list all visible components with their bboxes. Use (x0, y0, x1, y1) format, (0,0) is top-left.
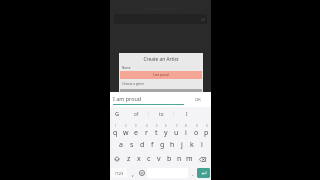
staticText: e (134, 128, 138, 138)
staticText: g (160, 140, 165, 150)
staticText: ?123 (115, 171, 124, 176)
button[interactable]: n (174, 152, 184, 166)
button[interactable]: Shift (110, 152, 124, 166)
button[interactable]: Backspace (194, 152, 211, 166)
staticText: I am proud (153, 73, 169, 77)
button[interactable]: f (147, 138, 157, 152)
button[interactable]: b (164, 152, 174, 166)
staticText: 6 (165, 124, 167, 128)
button[interactable]: I (174, 107, 199, 120)
staticText: 9 (196, 124, 198, 128)
staticText: z (127, 154, 131, 164)
button[interactable]: d (137, 138, 147, 152)
staticText: f (151, 140, 154, 150)
button[interactable]: of (124, 107, 149, 120)
button[interactable]: g (157, 138, 167, 152)
staticText: OK (195, 97, 201, 103)
button[interactable]: v (154, 152, 164, 166)
button[interactable]: Google search (110, 107, 124, 120)
staticText: d (140, 140, 145, 150)
staticText: of (134, 111, 139, 117)
staticText: . (192, 169, 194, 178)
staticText: u (174, 128, 179, 138)
button[interactable]: . (189, 166, 196, 180)
staticText: 0 (206, 124, 208, 128)
staticText: 2 (125, 124, 127, 128)
staticText: l (201, 140, 203, 150)
button[interactable]: 8 (181, 123, 191, 138)
button[interactable]: 3 (131, 123, 141, 138)
staticText: n (177, 154, 182, 164)
button[interactable]: j (177, 138, 187, 152)
staticText: Choose a genre (122, 82, 145, 86)
button[interactable]: x (134, 152, 144, 166)
staticText: 1 (115, 124, 117, 128)
button[interactable]: a (115, 138, 126, 152)
staticText: h (170, 140, 175, 150)
staticText: v (157, 154, 161, 164)
button[interactable]: 7 (171, 123, 181, 138)
button[interactable]: l (197, 138, 207, 152)
button[interactable]: m (184, 152, 194, 166)
button[interactable]: 0 (201, 123, 211, 138)
staticText: q (113, 128, 118, 138)
staticText: b (167, 154, 172, 164)
staticText: Name (122, 66, 131, 70)
staticText: m (186, 154, 193, 164)
button[interactable]: s (126, 138, 137, 152)
button[interactable]: h (167, 138, 177, 152)
staticText: Create an Artist (119, 56, 203, 63)
button[interactable]: 1 (110, 123, 121, 138)
staticText: r (145, 128, 148, 138)
button[interactable]: to (149, 107, 174, 120)
button[interactable]: 5 (151, 123, 161, 138)
staticText: j (181, 140, 183, 150)
button[interactable]: 6 (161, 123, 171, 138)
staticText: p (204, 128, 209, 138)
staticText: a (119, 140, 123, 150)
staticText: 8 (185, 124, 187, 128)
button[interactable]: 9 (191, 123, 201, 138)
staticText: c (147, 154, 151, 164)
button[interactable]: z (124, 152, 134, 166)
staticText: o (194, 128, 199, 138)
button[interactable]: Emoji (137, 166, 146, 180)
button[interactable]: k (187, 138, 197, 152)
staticText: 4 (146, 124, 148, 128)
button[interactable]: ?123 (111, 168, 127, 178)
staticText: , (132, 169, 134, 178)
staticText: I (186, 111, 188, 117)
staticText: t (155, 128, 158, 138)
staticText: I am proud (113, 95, 142, 102)
staticText: k (190, 140, 194, 150)
staticText: 5 (156, 124, 158, 128)
staticText: i (185, 128, 187, 138)
staticText: 3 (135, 124, 137, 128)
button[interactable]: Enter (197, 168, 210, 178)
staticText: s (130, 140, 134, 150)
button[interactable]: , (128, 166, 137, 180)
staticText: w (123, 128, 129, 138)
staticText: y (164, 128, 168, 138)
staticText: 7 (176, 124, 178, 128)
button[interactable]: 2 (121, 123, 131, 138)
staticText: to (159, 111, 164, 117)
staticText: x (137, 154, 141, 164)
staticText: G (115, 110, 120, 118)
button[interactable]: OK (184, 92, 211, 107)
button[interactable]: c (144, 152, 154, 166)
button[interactable]: 4 (141, 123, 151, 138)
